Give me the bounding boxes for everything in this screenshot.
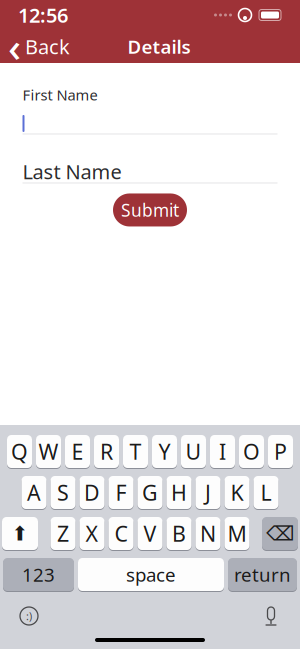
- button[interactable]: M: [224, 516, 249, 551]
- button[interactable]: U: [181, 434, 206, 469]
- button[interactable]: O: [239, 434, 264, 469]
- staticText: ‹: [8, 20, 21, 73]
- button[interactable]: C: [108, 516, 133, 551]
- staticText: Submit: [121, 198, 179, 221]
- staticText: O: [243, 437, 260, 466]
- button[interactable]: H: [166, 475, 191, 510]
- button[interactable]: N: [195, 516, 220, 551]
- staticText: First Name: [22, 85, 97, 104]
- staticText: F: [115, 478, 126, 507]
- button[interactable]: E: [65, 434, 90, 469]
- button[interactable]: Emoji: [14, 602, 44, 630]
- staticText: N: [200, 519, 216, 548]
- staticText: :): [26, 609, 32, 623]
- staticText: Q: [11, 437, 28, 466]
- staticText: 123: [22, 562, 55, 587]
- staticText: 12:56: [18, 2, 68, 28]
- button[interactable]: A: [21, 475, 46, 510]
- button[interactable]: Submit: [113, 193, 187, 226]
- staticText: space: [126, 562, 176, 587]
- button[interactable]: P: [268, 434, 293, 469]
- button[interactable]: G: [137, 475, 162, 510]
- button[interactable]: V: [137, 516, 162, 551]
- button[interactable]: Delete: [262, 516, 298, 551]
- button[interactable]: 123: [3, 557, 74, 592]
- staticText: H: [171, 478, 187, 507]
- button[interactable]: ‹: [0, 30, 80, 63]
- button[interactable]: F: [108, 475, 133, 510]
- staticText: R: [100, 437, 113, 466]
- staticText: Back: [25, 33, 70, 60]
- staticText: ⬆: [11, 522, 28, 545]
- button[interactable]: W: [36, 434, 61, 469]
- staticText: U: [185, 437, 201, 466]
- staticText: A: [27, 478, 41, 507]
- button[interactable]: B: [166, 516, 191, 551]
- staticText: B: [172, 519, 186, 548]
- staticText: X: [85, 519, 98, 548]
- staticText: return: [234, 562, 291, 587]
- button[interactable]: T: [123, 434, 148, 469]
- staticText: I: [219, 437, 226, 466]
- staticText: Z: [57, 519, 69, 548]
- button[interactable]: Z: [50, 516, 75, 551]
- staticText: Y: [158, 437, 170, 466]
- staticText: V: [143, 519, 156, 548]
- staticText: D: [84, 478, 100, 507]
- button[interactable]: return: [228, 557, 297, 592]
- staticText: K: [230, 478, 243, 507]
- button[interactable]: S: [50, 475, 75, 510]
- button[interactable]: D: [79, 475, 104, 510]
- button[interactable]: J: [195, 475, 220, 510]
- staticText: S: [57, 478, 69, 507]
- button[interactable]: K: [224, 475, 249, 510]
- staticText: C: [114, 519, 127, 548]
- staticText: M: [227, 519, 246, 548]
- button[interactable]: Shift: [2, 516, 38, 551]
- button[interactable]: space: [78, 557, 224, 592]
- button[interactable]: Dictation: [256, 602, 286, 630]
- staticText: T: [129, 437, 141, 466]
- button[interactable]: Q: [7, 434, 32, 469]
- button[interactable]: X: [79, 516, 104, 551]
- button[interactable]: I: [210, 434, 235, 469]
- staticText: P: [274, 437, 287, 466]
- staticText: E: [71, 437, 83, 466]
- staticText: W: [38, 437, 58, 466]
- staticText: ⌫: [266, 522, 294, 545]
- button[interactable]: L: [253, 475, 278, 510]
- staticText: G: [142, 478, 158, 507]
- staticText: J: [205, 478, 211, 507]
- button[interactable]: R: [94, 434, 119, 469]
- staticText: L: [260, 478, 271, 507]
- button[interactable]: Y: [152, 434, 177, 469]
- staticText: Last Name: [22, 158, 121, 185]
- staticText: Details: [127, 34, 190, 59]
